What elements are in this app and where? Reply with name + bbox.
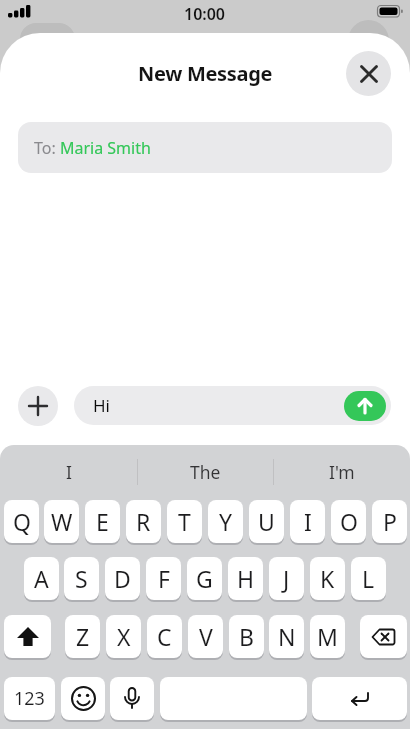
button[interactable]: K (310, 557, 345, 600)
staticText: W (51, 506, 73, 537)
staticText: P (383, 506, 397, 537)
button[interactable]: H (228, 557, 263, 600)
button[interactable] (160, 677, 307, 720)
button[interactable]: X (106, 615, 141, 658)
staticText: Y (219, 506, 233, 537)
staticText: Q (13, 506, 31, 537)
button[interactable]: N (269, 615, 304, 658)
button[interactable] (312, 677, 407, 720)
button[interactable]: J (269, 557, 304, 600)
staticText: R (136, 506, 151, 537)
button[interactable]: E (85, 500, 120, 543)
button[interactable]: Q (4, 500, 39, 543)
button[interactable]: F (146, 557, 181, 600)
button[interactable] (346, 51, 391, 96)
staticText: Z (76, 621, 90, 652)
staticText: G (196, 563, 213, 594)
staticText: I'm (329, 460, 355, 484)
button[interactable]: G (187, 557, 222, 600)
button[interactable] (4, 615, 51, 658)
staticText: E (96, 506, 109, 537)
staticText: 123 (14, 686, 45, 711)
staticText: B (239, 621, 254, 652)
button[interactable]: O (331, 500, 366, 543)
button[interactable] (344, 391, 386, 421)
button[interactable]: To: Maria Smith (18, 122, 392, 173)
button[interactable]: V (188, 615, 223, 658)
button[interactable]: S (64, 557, 99, 600)
staticText: S (75, 563, 88, 594)
button[interactable] (110, 677, 154, 720)
staticText: F (158, 563, 170, 594)
button[interactable]: I (0, 450, 137, 494)
staticText: Hi (93, 394, 110, 417)
button[interactable]: I (290, 500, 325, 543)
button[interactable]: A (24, 557, 59, 600)
button[interactable]: Y (208, 500, 243, 543)
button[interactable]: C (147, 615, 182, 658)
button[interactable] (61, 677, 105, 720)
staticText: A (34, 563, 49, 594)
staticText: 10:00 (184, 3, 226, 25)
button[interactable]: B (229, 615, 264, 658)
button[interactable]: The (137, 450, 274, 494)
button[interactable]: Z (65, 615, 100, 658)
button[interactable]: P (372, 500, 407, 543)
staticText: U (258, 506, 275, 537)
staticText: J (283, 563, 290, 594)
button[interactable]: W (44, 500, 79, 543)
staticText: I (66, 460, 72, 484)
staticText: L (362, 563, 375, 594)
staticText: K (320, 563, 335, 594)
staticText: I (304, 506, 312, 537)
button[interactable]: D (105, 557, 140, 600)
staticText: M (317, 621, 338, 652)
button[interactable]: U (249, 500, 284, 543)
button[interactable]: M (310, 615, 345, 658)
staticText: The (190, 460, 221, 484)
staticText: H (237, 563, 255, 594)
button[interactable]: R (126, 500, 161, 543)
staticText: X (117, 621, 131, 652)
button[interactable]: Hi (74, 386, 391, 425)
button[interactable] (360, 615, 407, 658)
staticText: C (157, 621, 172, 652)
staticText: O (340, 506, 358, 537)
button[interactable]: L (351, 557, 386, 600)
button[interactable]: I'm (273, 450, 410, 494)
staticText: New Message (138, 60, 273, 87)
staticText: T (178, 506, 191, 537)
button[interactable]: T (167, 500, 202, 543)
staticText: N (278, 621, 296, 652)
staticText: D (114, 563, 131, 594)
staticText: V (199, 621, 213, 652)
button[interactable]: 123 (4, 677, 55, 720)
staticText: To: Maria Smith (34, 137, 151, 159)
button[interactable] (18, 386, 58, 426)
